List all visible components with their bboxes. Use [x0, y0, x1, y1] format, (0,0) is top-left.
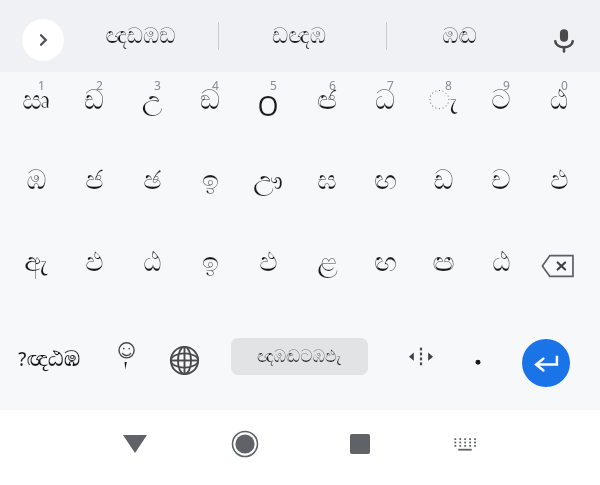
staticText: 0	[561, 77, 568, 93]
staticText: 6	[329, 77, 336, 93]
button[interactable]: ඌ	[240, 159, 296, 243]
staticText: ඵ	[85, 249, 104, 276]
staticText: ඵ	[259, 249, 278, 276]
staticText: ඹ	[26, 167, 47, 194]
button[interactable]: 7	[357, 74, 413, 159]
staticText: ළ	[317, 249, 338, 276]
staticText: ඝ	[317, 167, 337, 194]
button[interactable]: 9	[473, 74, 529, 159]
button[interactable]: ඹඬ	[404, 12, 514, 60]
button[interactable]: 3	[124, 74, 180, 159]
staticText: ඵ	[550, 167, 569, 194]
button[interactable]: 4	[182, 74, 238, 159]
staticText: 4	[212, 77, 219, 93]
staticText: ඍ	[8, 87, 64, 114]
staticText: ඥඩඹඞ	[105, 25, 176, 47]
button[interactable]: ඨ	[473, 243, 529, 325]
staticText: 8	[445, 77, 452, 93]
staticText: ඦ	[299, 87, 355, 114]
staticText: 7	[387, 77, 394, 93]
button[interactable]: Switch language	[158, 335, 210, 385]
button[interactable]: ඟ	[357, 159, 413, 243]
button[interactable]: ජ	[66, 159, 122, 243]
button[interactable]: ඩ	[415, 159, 471, 243]
staticText: ඏ	[432, 249, 455, 276]
staticText: ඌ	[253, 167, 283, 194]
staticText: ධ	[357, 87, 413, 114]
staticText: ඡ	[143, 167, 162, 194]
staticText: ඉ	[202, 249, 219, 276]
staticText: ඨ	[143, 249, 162, 276]
staticText: 3	[154, 77, 161, 93]
button[interactable]: ඡ	[124, 159, 180, 243]
staticText: ඨ	[492, 249, 511, 276]
button[interactable]: ඉ	[182, 159, 238, 243]
staticText: ඟ	[374, 167, 397, 194]
button[interactable]: Backspace	[530, 243, 586, 325]
button[interactable]: ඵ	[66, 243, 122, 325]
button[interactable]: ඵ	[531, 159, 587, 243]
staticText: ච	[491, 167, 511, 194]
button[interactable]: ඟ	[357, 243, 413, 325]
button[interactable]: ඇ	[8, 243, 64, 325]
staticText: ඩ	[433, 167, 454, 194]
button[interactable]: 1	[8, 74, 64, 159]
button[interactable]: Home	[185, 410, 305, 485]
staticText: ඹඬ	[442, 25, 477, 47]
button[interactable]: ඝ	[299, 159, 355, 243]
button[interactable]: ඩඥඹ	[244, 12, 354, 60]
button[interactable]: 6	[299, 74, 355, 159]
staticText: 9	[503, 77, 510, 93]
staticText: උ	[124, 87, 180, 114]
button[interactable]: 5	[240, 74, 296, 159]
staticText: ඩ	[66, 87, 122, 114]
staticText: ට	[473, 87, 529, 114]
staticText: 5	[270, 77, 277, 93]
button[interactable]: ළ	[299, 243, 355, 325]
staticText: 2	[96, 77, 103, 93]
staticText: ජ	[85, 167, 104, 194]
button[interactable]: 0	[531, 74, 587, 159]
button[interactable]	[452, 333, 504, 385]
button[interactable]: ඉ	[182, 243, 238, 325]
staticText: O	[240, 87, 296, 124]
button[interactable]: Voice input	[540, 16, 588, 64]
staticText: ?ඥඨඹ	[18, 346, 81, 372]
button[interactable]: ඨ	[124, 243, 180, 325]
button[interactable]: Recents	[305, 410, 415, 485]
button[interactable]: ච	[473, 159, 529, 243]
button[interactable]: ඥඹඬටඹඵැ	[231, 338, 368, 375]
staticText: ඞ	[182, 87, 238, 114]
button[interactable]: Emoji and comma	[100, 333, 156, 387]
button[interactable]: Hide keyboard	[85, 410, 185, 485]
staticText: ඨ	[531, 87, 587, 114]
staticText: ඥඹඬටඹඵැ	[257, 348, 342, 365]
button[interactable]: ඹ	[8, 159, 64, 243]
staticText: ැ	[415, 87, 471, 114]
button[interactable]: Move cursor	[394, 337, 448, 379]
button[interactable]: ඥඩඹඞ	[85, 12, 195, 60]
staticText: ඩඥඹ	[272, 25, 326, 47]
button[interactable]: ?ඥඨඹ	[12, 333, 86, 385]
button[interactable]: Enter	[522, 339, 570, 387]
staticText: ඇ	[24, 249, 48, 276]
staticText: 1	[38, 77, 45, 93]
button[interactable]: 8	[415, 74, 471, 159]
button[interactable]: Change keyboard	[415, 410, 515, 485]
button[interactable]: Expand suggestions	[22, 19, 64, 61]
staticText: ඉ	[202, 167, 219, 194]
button[interactable]: 2	[66, 74, 122, 159]
staticText: ඟ	[374, 249, 397, 276]
button[interactable]: ඵ	[240, 243, 296, 325]
button[interactable]: ඏ	[415, 243, 471, 325]
